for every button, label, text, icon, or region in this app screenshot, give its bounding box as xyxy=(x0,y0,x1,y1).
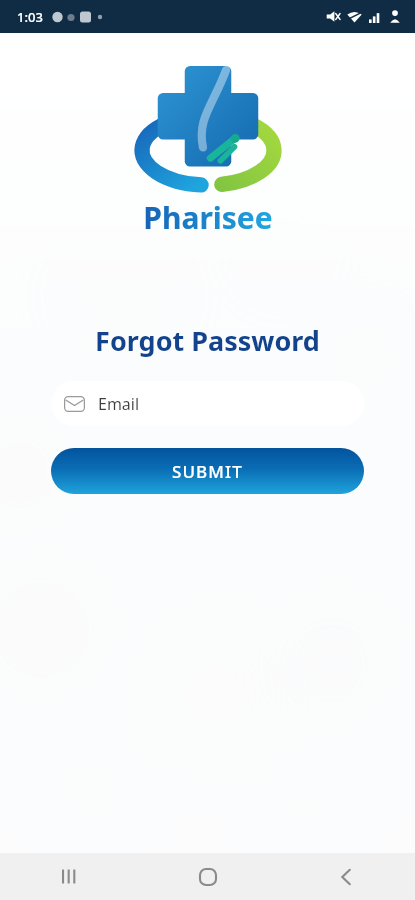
button[interactable]: Back xyxy=(277,853,415,900)
staticText: Forgot Password xyxy=(95,322,320,359)
staticText: Email xyxy=(98,393,140,415)
staticText: 1:03 xyxy=(17,8,43,26)
button[interactable]: Email xyxy=(51,381,364,426)
staticText: Pharisee xyxy=(143,197,273,238)
button[interactable]: SUBMIT xyxy=(51,448,364,494)
button[interactable]: Recent apps xyxy=(0,853,139,900)
button[interactable]: Home xyxy=(139,853,277,900)
staticText: SUBMIT xyxy=(172,460,243,483)
